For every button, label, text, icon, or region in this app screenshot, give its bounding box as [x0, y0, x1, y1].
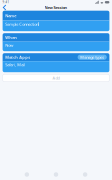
staticText: Add	[52, 75, 59, 81]
staticText: 9:41	[3, 0, 10, 4]
button[interactable]: Back	[0, 4, 9, 10]
staticText: Now	[5, 43, 13, 48]
button[interactable]: Devices	[54, 172, 58, 177]
staticText: When	[5, 35, 17, 40]
staticText: Name	[5, 13, 16, 18]
button[interactable]: Sample Connection	[3, 20, 109, 31]
staticText: New Session	[44, 5, 67, 10]
button[interactable]: Add	[3, 74, 109, 82]
button[interactable]: Safari, Mail	[3, 61, 109, 72]
button[interactable]: Now	[3, 42, 109, 51]
staticText: Sample Connection	[5, 21, 38, 27]
staticText: Safari, Mail	[5, 62, 25, 67]
button[interactable]: Manage types	[78, 55, 107, 60]
staticText: Match Apps	[5, 54, 30, 60]
button[interactable]: Settings	[83, 172, 87, 177]
staticText: Manage types	[80, 54, 104, 60]
button[interactable]: Sessions	[25, 172, 29, 177]
